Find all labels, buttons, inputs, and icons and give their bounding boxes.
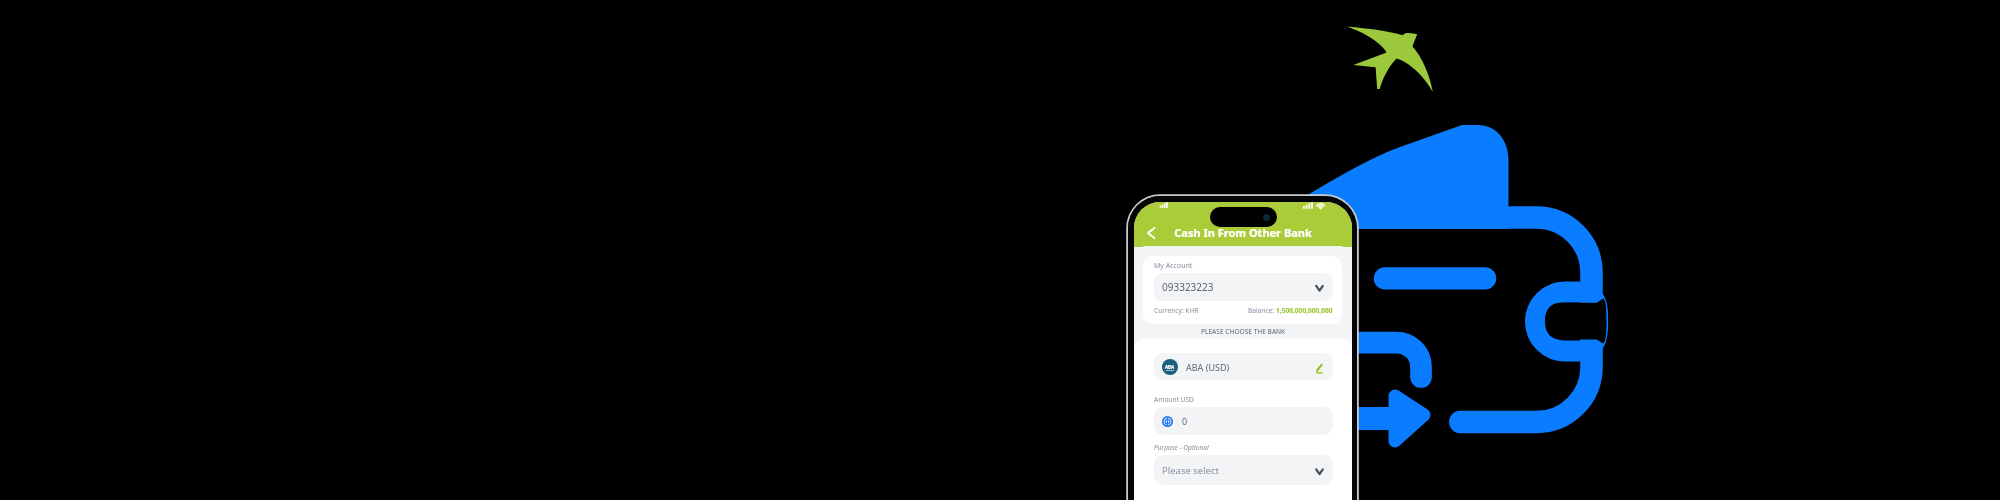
staticText: Balance:: [1248, 306, 1276, 315]
staticText: Purpose - Optional: [1154, 443, 1209, 452]
button[interactable]: Back: [1138, 223, 1163, 243]
staticText: Currency: KHR: [1154, 306, 1199, 315]
staticText: PLEASE CHOOSE THE BANK: [1201, 327, 1286, 336]
staticText: Please select: [1162, 464, 1219, 477]
staticText: Amount USD: [1154, 395, 1194, 404]
staticText: ABA: [1165, 364, 1175, 370]
staticText: My Account: [1154, 261, 1193, 271]
staticText: 093323223: [1162, 280, 1214, 294]
staticText: Cash In From Other Bank: [1134, 225, 1352, 240]
other: Edit: [1316, 363, 1323, 374]
staticText: 1,500,000,000,000: [1276, 306, 1333, 315]
button[interactable]: 0: [1154, 407, 1333, 435]
button[interactable]: Please select: [1154, 455, 1333, 485]
staticText: ABA (USD): [1186, 361, 1230, 373]
button[interactable]: 093323223: [1154, 273, 1333, 301]
button[interactable]: ABA: [1154, 353, 1333, 380]
staticText: 0: [1182, 415, 1188, 427]
